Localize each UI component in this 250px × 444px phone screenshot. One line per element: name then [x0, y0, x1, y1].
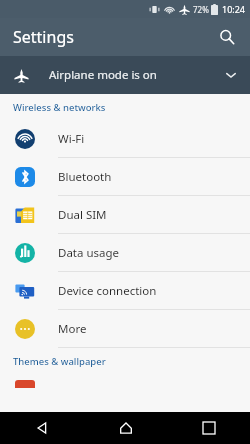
- staticText: Themes & wallpaper: [13, 355, 106, 368]
- staticText: 10:24: [222, 3, 246, 15]
- staticText: Data usage: [58, 245, 120, 261]
- button[interactable]: Airplane mode is on: [0, 56, 250, 94]
- button[interactable]: Device connection: [0, 272, 250, 310]
- button[interactable]: Wi-Fi: [0, 120, 250, 158]
- button[interactable]: More: [0, 310, 250, 348]
- staticText: Wireless & networks: [13, 101, 106, 114]
- staticText: Settings: [13, 26, 74, 48]
- staticText: More: [58, 321, 87, 337]
- button[interactable]: Data usage: [0, 234, 250, 272]
- button[interactable]: Recents: [167, 412, 250, 444]
- staticText: Airplane mode is on: [49, 67, 157, 83]
- button[interactable]: Bluetooth: [0, 158, 250, 196]
- staticText: Wi-Fi: [58, 131, 85, 147]
- button[interactable]: Search: [212, 22, 242, 52]
- staticText: Bluetooth: [58, 169, 112, 185]
- button[interactable]: Home: [84, 412, 167, 444]
- button[interactable]: Back: [0, 412, 84, 444]
- button[interactable]: Dual SIM: [0, 196, 250, 234]
- staticText: Dual SIM: [58, 207, 107, 223]
- staticText: Device connection: [58, 283, 157, 299]
- staticText: 72%: [193, 4, 209, 15]
